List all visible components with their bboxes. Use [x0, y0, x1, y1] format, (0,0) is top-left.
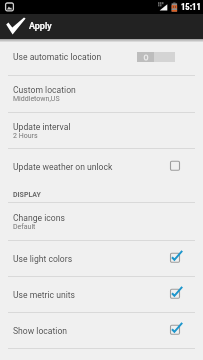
staticText: Use metric units: [13, 290, 76, 300]
button[interactable]: Custom location: [0, 76, 203, 112]
staticText: Default: [13, 223, 36, 231]
button[interactable]: Use automatic location toggle: [119, 44, 193, 70]
button[interactable]: Change icons: [0, 203, 203, 240]
staticText: DISPLAY: [13, 191, 41, 199]
button[interactable]: Use automatic location: [0, 39, 203, 75]
staticText: Change icons: [13, 213, 65, 223]
button[interactable]: Show location: [0, 313, 203, 348]
staticText: Custom location: [13, 85, 76, 95]
button[interactable]: Use light colors: [0, 241, 203, 276]
staticText: Use automatic location: [13, 52, 102, 62]
staticText: Show location: [13, 326, 68, 336]
button[interactable]: Use metric units: [157, 282, 193, 308]
staticText: Update interval: [13, 122, 71, 132]
staticText: 15:11: [181, 2, 201, 12]
staticText: Middletown,US: [13, 95, 60, 103]
button[interactable]: Update weather on unlock: [157, 154, 193, 180]
staticText: 2 Hours: [13, 132, 38, 140]
button[interactable]: Update interval: [0, 113, 203, 148]
button[interactable]: Use light colors: [157, 246, 193, 272]
button[interactable]: Show location: [157, 318, 193, 344]
staticText: Apply: [29, 21, 52, 32]
button[interactable]: Use metric units: [0, 277, 203, 312]
button[interactable]: Update weather on unlock: [0, 149, 203, 185]
button[interactable]: Apply: [0, 14, 203, 39]
staticText: Update weather on unlock: [13, 162, 113, 172]
staticText: Use light colors: [13, 254, 73, 264]
